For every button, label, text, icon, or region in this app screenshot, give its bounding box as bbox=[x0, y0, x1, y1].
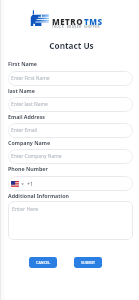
staticText: Enter Company Name bbox=[11, 153, 62, 160]
staticText: Enter last Name bbox=[11, 101, 48, 108]
button[interactable]: Enter Email bbox=[8, 123, 133, 138]
staticText: CANCEL bbox=[36, 260, 51, 265]
staticText: Enter Here bbox=[12, 205, 39, 212]
staticText: Additional Information bbox=[8, 192, 69, 199]
button[interactable]: Enter Here bbox=[8, 201, 133, 240]
button[interactable]: +1 bbox=[8, 176, 133, 191]
staticText: Contact Us bbox=[49, 40, 94, 51]
staticText: Company Name bbox=[8, 139, 51, 146]
button[interactable]: SUBMIT bbox=[74, 257, 102, 268]
button[interactable]: Enter last Name bbox=[8, 97, 133, 112]
button[interactable]: Enter First Name bbox=[8, 71, 133, 86]
staticText: Enter Email bbox=[11, 127, 38, 134]
staticText: TMS bbox=[84, 16, 103, 27]
staticText: First Name bbox=[8, 60, 38, 67]
button[interactable]: Enter Company Name bbox=[8, 149, 133, 164]
staticText: Enter First Name bbox=[11, 75, 50, 82]
staticText: Phone Number bbox=[8, 165, 48, 172]
staticText: TRUCK BROKER SHIPPER bbox=[52, 25, 100, 29]
staticText: SUBMIT bbox=[81, 260, 96, 265]
staticText: last Name bbox=[8, 87, 35, 94]
staticText: METRO bbox=[52, 16, 84, 27]
staticText: Email Address bbox=[8, 113, 45, 120]
staticText: +1 bbox=[27, 180, 33, 187]
button[interactable]: CANCEL bbox=[29, 257, 57, 268]
